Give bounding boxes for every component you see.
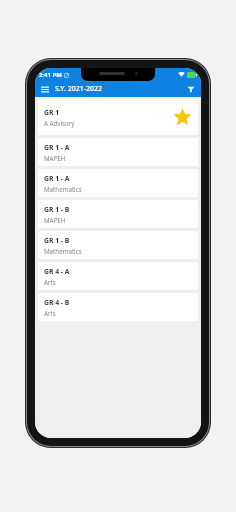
staticText: Mathematics (44, 185, 82, 193)
staticText: GR 4 - B (44, 298, 70, 307)
staticText: MAPEH (44, 154, 66, 162)
button[interactable]: GR 1 - B (38, 200, 198, 228)
button[interactable]: GR 1 (38, 99, 198, 135)
staticText: Arts (44, 278, 56, 286)
staticText: GR 1 - A (44, 143, 70, 152)
staticText: GR 1 - B (44, 205, 70, 214)
staticText: Arts (44, 309, 56, 317)
button[interactable]: Filter (184, 82, 198, 96)
button[interactable]: GR 1 - A (38, 138, 198, 166)
staticText: Mathematics (44, 247, 82, 255)
staticText: GR 1 (44, 108, 60, 117)
staticText: A Advisory (44, 119, 75, 127)
staticText: GR 1 - B (44, 236, 70, 245)
button[interactable]: Open navigation menu (38, 82, 52, 96)
button[interactable]: GR 1 - A (38, 169, 198, 197)
staticText: GR 4 - A (44, 267, 70, 276)
button[interactable]: GR 1 - B (38, 231, 198, 259)
staticText: S.Y. 2021-2022 (55, 84, 103, 94)
staticText: GR 1 - A (44, 174, 70, 183)
button[interactable]: GR 4 - B (38, 293, 198, 321)
staticText: 2:41 PM (39, 71, 62, 79)
button[interactable]: GR 4 - A (38, 262, 198, 290)
staticText: MAPEH (44, 216, 66, 224)
